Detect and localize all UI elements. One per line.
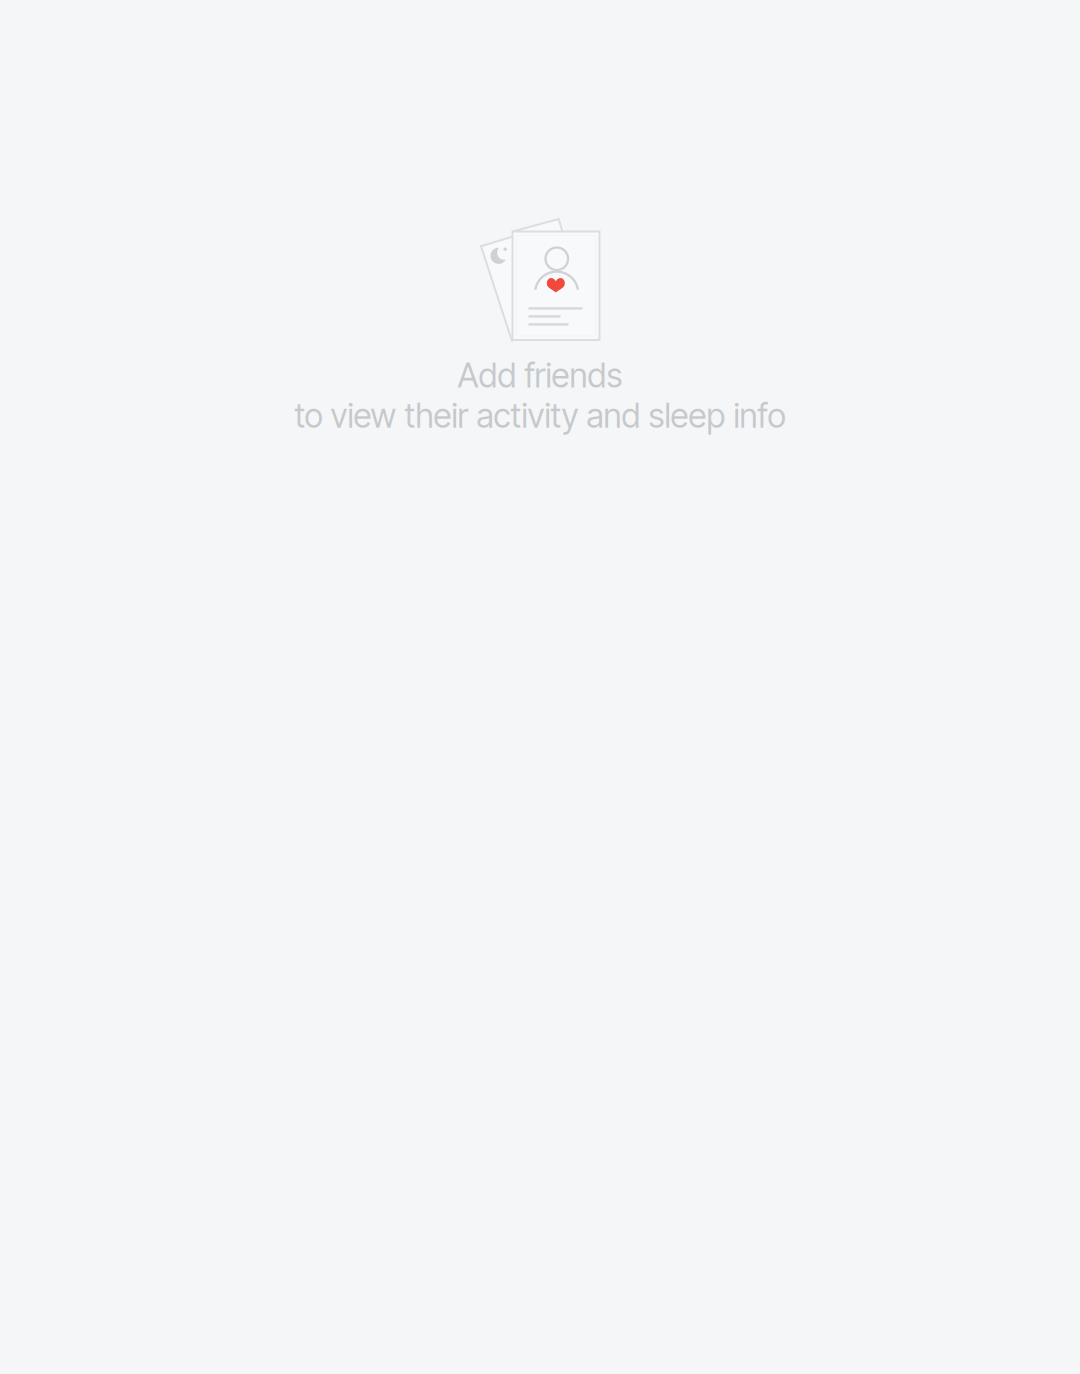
staticText: to view their activity and sleep info [294, 395, 785, 436]
staticText: Add friends [457, 355, 622, 395]
button[interactable]: Add friends [0, 0, 1080, 1374]
